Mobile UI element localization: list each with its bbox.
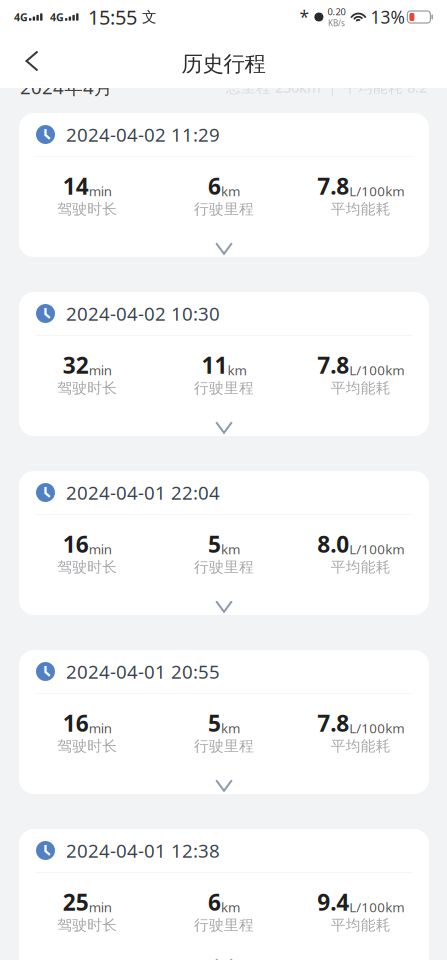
staticText: 4G: [50, 10, 64, 24]
staticText: 平均能耗: [331, 558, 391, 576]
staticText: 16: [63, 529, 89, 559]
staticText: min: [89, 719, 112, 737]
staticText: 15:55: [88, 4, 137, 30]
staticText: 平均能耗: [331, 379, 391, 397]
staticText: 行驶里程: [194, 379, 254, 397]
button[interactable]: 2024-04-02 10:30: [19, 292, 429, 436]
staticText: 行驶里程: [194, 558, 254, 576]
staticText: km: [221, 898, 240, 916]
button[interactable]: 2024-04-01 12:38: [19, 829, 429, 960]
staticText: 驾驶时长: [57, 737, 117, 755]
staticText: 7.8: [317, 171, 349, 201]
staticText: 5: [208, 708, 221, 738]
staticText: 6: [208, 171, 221, 201]
staticText: L/100km: [349, 540, 404, 558]
staticText: 7.8: [317, 708, 349, 738]
staticText: 13%: [370, 5, 404, 28]
staticText: 平均能耗: [331, 916, 391, 934]
staticText: 7.8: [317, 350, 349, 380]
staticText: 驾驶时长: [57, 558, 117, 576]
staticText: 11: [201, 350, 227, 380]
staticText: km: [221, 719, 240, 737]
button[interactable]: 2024-04-02 11:29: [19, 113, 429, 257]
staticText: 驾驶时长: [57, 916, 117, 934]
staticText: 2024-04-02 10:30: [66, 301, 220, 326]
staticText: 16: [63, 708, 89, 738]
staticText: 驾驶时长: [57, 379, 117, 397]
staticText: 5: [208, 529, 221, 559]
staticText: km: [221, 182, 240, 200]
staticText: 32: [63, 350, 89, 380]
staticText: min: [89, 182, 112, 200]
staticText: 行驶里程: [194, 737, 254, 755]
staticText: 6: [208, 887, 221, 917]
staticText: 文: [142, 8, 157, 26]
staticText: KB/s: [328, 18, 345, 28]
button[interactable]: Back: [12, 41, 52, 81]
staticText: 行驶里程: [194, 916, 254, 934]
staticText: L/100km: [349, 182, 404, 200]
staticText: min: [89, 540, 112, 558]
staticText: 平均能耗: [331, 200, 391, 218]
staticText: 4G: [14, 10, 28, 24]
staticText: 2024-04-01 12:38: [66, 838, 220, 863]
staticText: 9.4: [317, 887, 349, 917]
staticText: 2024-04-02 11:29: [66, 122, 220, 147]
staticText: L/100km: [349, 361, 404, 379]
staticText: 历史行程: [181, 51, 265, 77]
staticText: 8.0: [317, 529, 349, 559]
staticText: 行驶里程: [194, 200, 254, 218]
staticText: min: [89, 361, 112, 379]
staticText: km: [227, 361, 246, 379]
staticText: km: [221, 540, 240, 558]
staticText: 平均能耗: [331, 737, 391, 755]
staticText: 25: [63, 887, 89, 917]
staticText: 2024年4月: [20, 75, 113, 99]
staticText: 14: [63, 171, 89, 201]
staticText: 总里程 230km ｜ 平均能耗 8.2: [226, 77, 427, 97]
staticText: 2024-04-01 22:04: [66, 480, 220, 505]
staticText: L/100km: [349, 719, 404, 737]
staticText: 驾驶时长: [57, 200, 117, 218]
button[interactable]: 2024-04-01 22:04: [19, 471, 429, 615]
staticText: 2024-04-01 20:55: [66, 659, 220, 684]
staticText: 0.20: [327, 5, 345, 18]
staticText: *: [299, 5, 309, 28]
staticText: min: [89, 898, 112, 916]
button[interactable]: 2024-04-01 20:55: [19, 650, 429, 794]
staticText: L/100km: [349, 898, 404, 916]
